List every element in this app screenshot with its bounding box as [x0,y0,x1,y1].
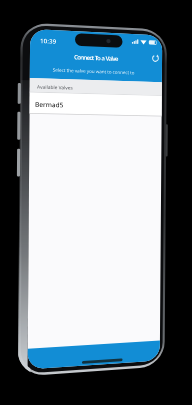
button[interactable] [0,0,192,405]
button[interactable] [30,94,160,115]
button[interactable] [150,52,162,64]
